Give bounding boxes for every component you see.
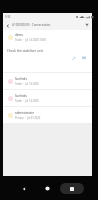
staticText: Trade · Jul 14 2020 bbox=[15, 99, 39, 103]
button[interactable]: Sunlinds bbox=[3, 90, 92, 106]
staticText: Sunlinds bbox=[15, 94, 27, 98]
button[interactable]: Reply bbox=[80, 54, 88, 62]
button[interactable]: Sunlinds bbox=[3, 73, 92, 89]
button[interactable]: administrator bbox=[3, 107, 92, 123]
staticText: Trade · Jul 14 2020 bbox=[15, 82, 39, 86]
staticText: Sunlinds bbox=[15, 77, 27, 81]
button[interactable]: Back bbox=[3, 21, 12, 30]
button[interactable]: Back bbox=[17, 182, 30, 195]
staticText: Trade · Jul 14 2020 10:00 bbox=[15, 38, 46, 42]
button[interactable]: Edit bbox=[70, 54, 78, 62]
button[interactable]: Home bbox=[41, 182, 54, 195]
staticText: Privacy · Jul 01 2020 bbox=[15, 116, 41, 120]
staticText: demo bbox=[15, 33, 23, 37]
staticText: administrator bbox=[15, 111, 34, 115]
button[interactable]: Recents bbox=[65, 182, 78, 195]
staticText: 9:30 bbox=[5, 15, 11, 19]
button[interactable]: Filter bbox=[82, 20, 92, 30]
staticText: Check the stabiliser unit bbox=[7, 49, 43, 53]
staticText: #100000005 · Conversation bbox=[12, 23, 51, 27]
